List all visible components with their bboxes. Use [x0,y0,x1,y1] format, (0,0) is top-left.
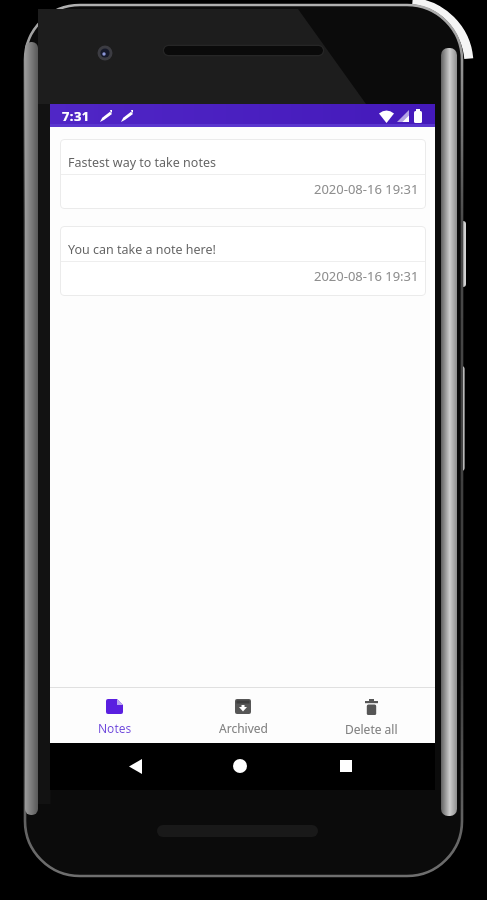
button[interactable]: Archived [179,688,307,743]
button[interactable]: Fastest way to take notes [60,139,426,209]
staticText: Notes [98,720,132,736]
staticText: Archived [219,720,268,736]
button[interactable] [226,750,254,782]
staticText: 2020-08-16 19:31 [314,267,419,285]
button[interactable]: You can take a note here! [60,226,426,296]
staticText: 7:31 [62,107,90,125]
staticText: Delete all [345,721,398,737]
staticText: You can take a note here! [68,241,216,258]
button[interactable]: Delete all [307,688,435,743]
button[interactable] [121,750,149,782]
staticText: 2020-08-16 19:31 [314,180,419,198]
staticText: Fastest way to take notes [68,154,216,171]
button[interactable]: Notes [50,688,179,743]
button[interactable] [332,750,360,782]
